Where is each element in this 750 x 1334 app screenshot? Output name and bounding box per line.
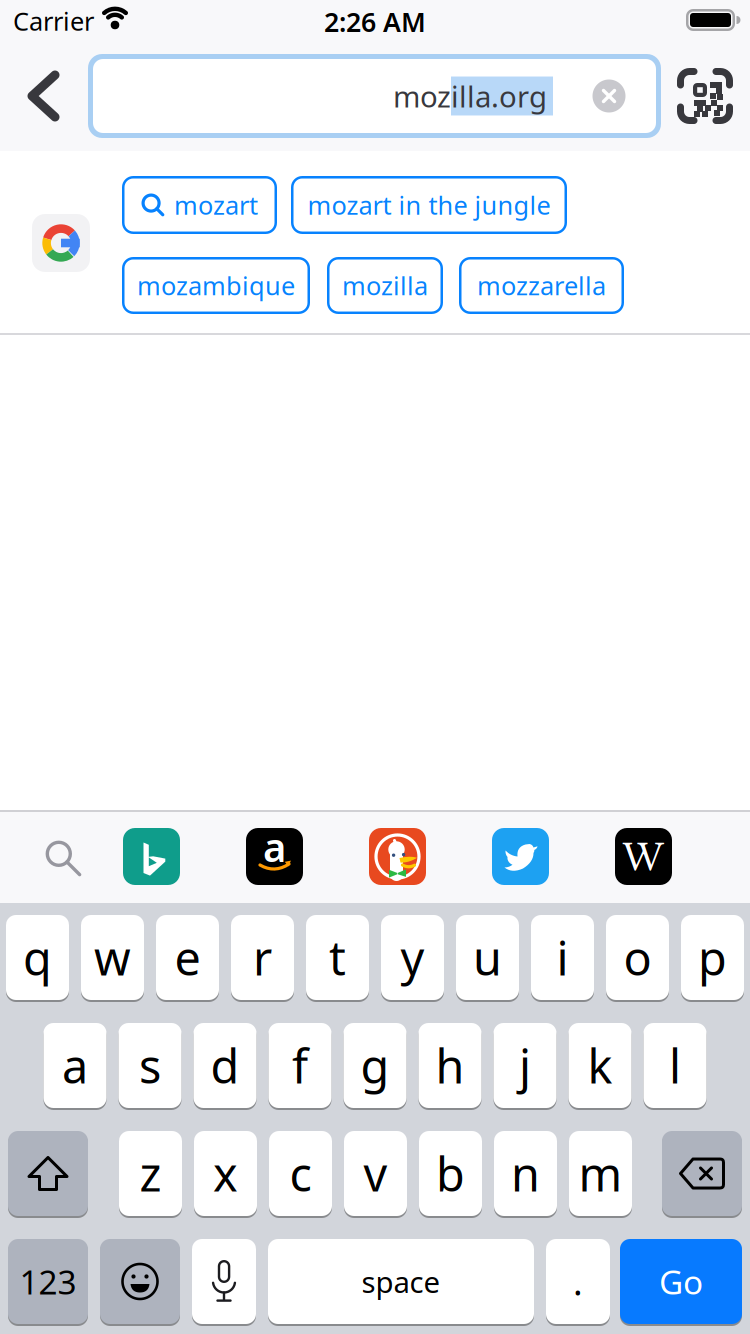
- button[interactable]: mozart: [122, 176, 277, 234]
- button[interactable]: Emoji: [100, 1239, 180, 1324]
- button[interactable]: Clear: [587, 74, 631, 118]
- staticText: mozzarella: [477, 269, 606, 302]
- staticText: r: [253, 926, 272, 988]
- button[interactable]: Back: [19, 66, 79, 126]
- button[interactable]: mozzarella: [459, 257, 624, 314]
- staticText: mozilla: [342, 269, 428, 302]
- button[interactable]: p: [681, 915, 744, 1000]
- button[interactable]: x: [194, 1131, 257, 1216]
- staticText: 123: [19, 1259, 76, 1304]
- button[interactable]: n: [494, 1131, 557, 1216]
- staticText: h: [435, 1034, 464, 1096]
- button[interactable]: Delete: [662, 1131, 742, 1216]
- staticText: m: [578, 1142, 622, 1204]
- staticText: f: [292, 1034, 308, 1096]
- staticText: s: [139, 1034, 161, 1096]
- button[interactable]: Amazon: [246, 828, 303, 885]
- staticText: z: [139, 1142, 161, 1204]
- staticText: e: [174, 926, 200, 988]
- staticText: c: [289, 1142, 311, 1204]
- staticText: d: [210, 1034, 239, 1096]
- staticText: Go: [659, 1259, 703, 1304]
- button[interactable]: Shift: [8, 1131, 88, 1216]
- button[interactable]: w: [81, 915, 144, 1000]
- staticText: y: [400, 926, 424, 988]
- staticText: W: [622, 831, 664, 882]
- button[interactable]: b: [419, 1131, 482, 1216]
- button[interactable]: Bing: [123, 828, 180, 885]
- staticText: v: [363, 1142, 387, 1204]
- staticText: x: [213, 1142, 238, 1204]
- button[interactable]: r: [231, 915, 294, 1000]
- staticText: l: [669, 1034, 681, 1096]
- staticText: u: [473, 926, 502, 988]
- staticText: a: [62, 1034, 88, 1096]
- button[interactable]: t: [306, 915, 369, 1000]
- button[interactable]: Wikipedia: [615, 828, 672, 885]
- staticText: w: [94, 926, 131, 988]
- button[interactable]: l: [643, 1023, 706, 1108]
- button[interactable]: u: [456, 915, 519, 1000]
- button[interactable]: y: [381, 915, 444, 1000]
- button[interactable]: mozilla: [327, 257, 443, 314]
- button[interactable]: z: [119, 1131, 182, 1216]
- button[interactable]: Dictate: [192, 1239, 256, 1324]
- staticText: illa.org: [451, 76, 547, 115]
- button[interactable]: c: [269, 1131, 332, 1216]
- button[interactable]: Twitter: [492, 828, 549, 885]
- button[interactable]: d: [193, 1023, 256, 1108]
- staticText: q: [23, 926, 52, 988]
- staticText: a: [263, 820, 286, 873]
- button[interactable]: space: [268, 1239, 534, 1324]
- button[interactable]: Scan QR code: [671, 62, 739, 130]
- button[interactable]: mozart in the jungle: [291, 176, 567, 234]
- button[interactable]: k: [568, 1023, 631, 1108]
- button[interactable]: j: [493, 1023, 556, 1108]
- button[interactable]: f: [268, 1023, 331, 1108]
- button[interactable]: q: [6, 915, 69, 1000]
- staticText: mozambique: [137, 269, 295, 302]
- staticText: n: [511, 1142, 540, 1204]
- button[interactable]: mozambique: [122, 257, 310, 314]
- button[interactable]: Go: [620, 1239, 742, 1324]
- staticText: space: [361, 1262, 440, 1301]
- button[interactable]: i: [531, 915, 594, 1000]
- button[interactable]: s: [118, 1023, 181, 1108]
- button[interactable]: 123: [8, 1239, 88, 1324]
- staticText: g: [360, 1034, 389, 1096]
- button[interactable]: .: [546, 1239, 610, 1324]
- button[interactable]: moz: [88, 54, 661, 138]
- staticText: mozart in the jungle: [307, 188, 550, 222]
- staticText: o: [623, 926, 651, 988]
- staticText: j: [519, 1034, 531, 1096]
- button[interactable]: a: [43, 1023, 106, 1108]
- staticText: t: [329, 926, 346, 988]
- staticText: mozart: [174, 188, 258, 222]
- staticText: p: [698, 926, 727, 988]
- staticText: i: [556, 926, 568, 988]
- button[interactable]: v: [344, 1131, 407, 1216]
- staticText: k: [587, 1034, 612, 1096]
- button[interactable]: DuckDuckGo: [369, 828, 426, 885]
- staticText: moz: [393, 76, 451, 115]
- staticText: Carrier: [13, 4, 94, 38]
- staticText: .: [573, 1258, 583, 1305]
- button[interactable]: h: [418, 1023, 481, 1108]
- button[interactable]: m: [569, 1131, 632, 1216]
- button[interactable]: e: [156, 915, 219, 1000]
- button[interactable]: o: [606, 915, 669, 1000]
- button[interactable]: Search settings: [42, 837, 82, 877]
- staticText: b: [436, 1142, 465, 1204]
- button[interactable]: g: [343, 1023, 406, 1108]
- staticText: 2:26 AM: [324, 4, 426, 39]
